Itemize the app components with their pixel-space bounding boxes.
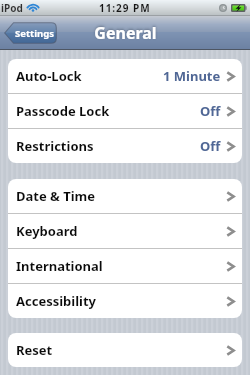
staticText: Accessibility xyxy=(16,292,97,310)
staticText: Off xyxy=(200,137,221,155)
other: Open xyxy=(226,296,235,307)
button[interactable]: Keyboard xyxy=(8,214,242,248)
button[interactable]: Date & Time xyxy=(8,179,242,213)
other: Open xyxy=(226,345,235,356)
other: Open xyxy=(226,106,235,117)
other: Open xyxy=(226,191,235,202)
button[interactable]: Restrictions xyxy=(8,129,242,163)
staticText: Keyboard xyxy=(16,222,78,240)
staticText: 1 Minute xyxy=(163,67,221,85)
other: Open xyxy=(226,226,235,237)
staticText: Off xyxy=(200,102,221,120)
button[interactable]: International xyxy=(8,249,242,283)
button[interactable]: Passcode Lock xyxy=(8,94,242,128)
staticText: International xyxy=(16,257,103,275)
staticText: 11:29 PM xyxy=(99,1,151,15)
button[interactable]: Settings xyxy=(4,22,57,44)
staticText: Date & Time xyxy=(16,187,96,205)
button[interactable]: Auto-Lock xyxy=(8,59,242,93)
other: Open xyxy=(226,141,235,152)
staticText: Reset xyxy=(16,341,53,359)
staticText: iPod xyxy=(1,1,23,15)
other: Open xyxy=(226,71,235,82)
button[interactable]: Accessibility xyxy=(8,284,242,318)
button[interactable]: Reset xyxy=(8,333,242,367)
staticText: General xyxy=(94,22,157,44)
other: Open xyxy=(226,261,235,272)
staticText: Passcode Lock xyxy=(16,102,110,120)
staticText: Restrictions xyxy=(16,137,94,155)
staticText: Auto-Lock xyxy=(16,67,82,85)
staticText: Settings xyxy=(15,27,54,40)
